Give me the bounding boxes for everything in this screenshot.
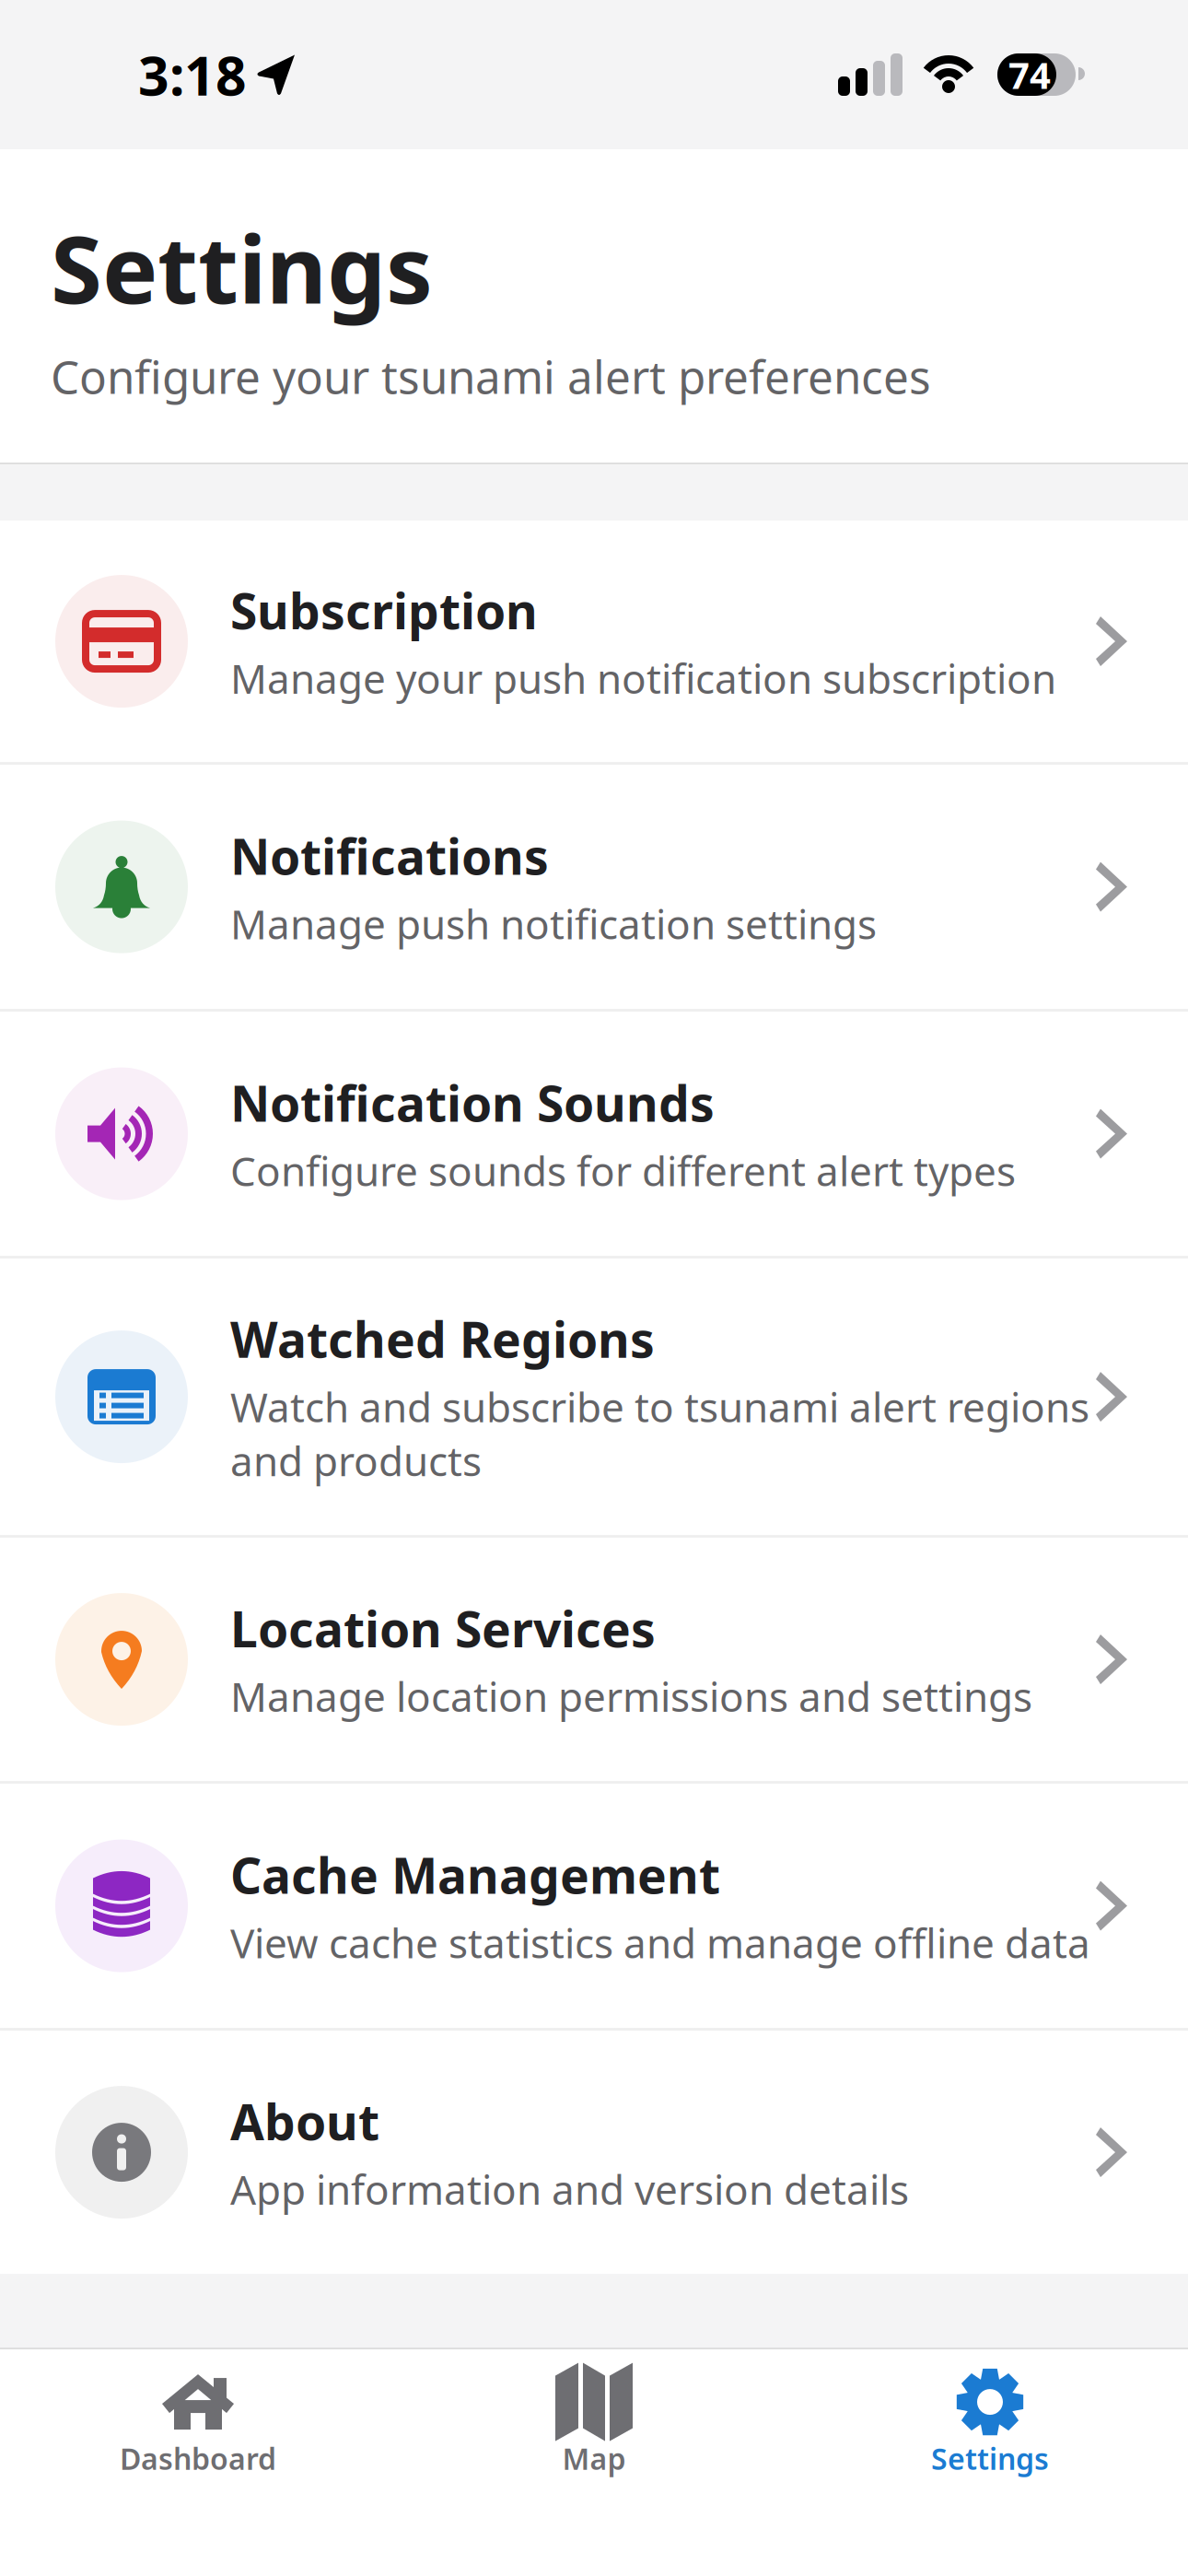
staticText: Manage location permissions and settings [230, 1669, 1032, 1723]
button[interactable]: Settings [792, 2349, 1188, 2576]
staticText: Notification Sounds [230, 1070, 715, 1135]
staticText: Subscription [230, 578, 538, 643]
button[interactable]: Cache Management [0, 1784, 1188, 2028]
staticText: Notifications [230, 823, 549, 888]
staticText: 3:18 [138, 39, 247, 110]
staticText: Dashboard [120, 2439, 276, 2478]
button[interactable]: About [0, 2031, 1188, 2274]
button[interactable]: Map [396, 2349, 792, 2576]
staticText: App information and version details [230, 2162, 909, 2216]
button[interactable]: Dashboard [0, 2349, 396, 2576]
staticText: Cache Management [230, 1842, 720, 1907]
staticText: Settings [51, 205, 433, 329]
button[interactable]: Subscription [0, 521, 1188, 762]
staticText: Location Services [230, 1596, 656, 1661]
staticText: Configure sounds for different alert typ… [230, 1144, 1016, 1197]
staticText: 74 [1008, 50, 1051, 99]
staticText: Manage your push notification subscripti… [230, 651, 1056, 705]
staticText: View cache statistics and manage offline… [230, 1916, 1090, 1969]
button[interactable]: Location Services [0, 1538, 1188, 1781]
staticText: Watched Regions [230, 1306, 655, 1371]
button[interactable]: Notification Sounds [0, 1012, 1188, 1256]
staticText: Watch and subscribe to tsunami alert reg… [230, 1380, 1089, 1487]
staticText: About [230, 2089, 379, 2154]
staticText: Manage push notification settings [230, 897, 877, 951]
staticText: Map [562, 2439, 626, 2478]
button[interactable]: Watched Regions [0, 1259, 1188, 1535]
staticText: Settings [931, 2439, 1049, 2478]
button[interactable]: Notifications [0, 765, 1188, 1009]
staticText: Configure your tsunami alert preferences [51, 346, 931, 406]
